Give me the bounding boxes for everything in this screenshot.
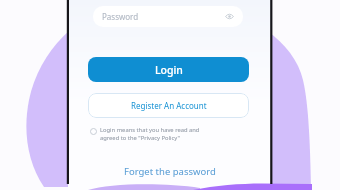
staticText: Register An Account bbox=[131, 100, 207, 111]
button[interactable]: Login means that you have read and agree… bbox=[90, 126, 202, 142]
button[interactable]: Register An Account bbox=[88, 93, 249, 118]
button[interactable]: Password bbox=[93, 6, 243, 27]
button[interactable]: Login bbox=[88, 57, 249, 82]
button[interactable]: Show password bbox=[224, 11, 235, 22]
staticText: Login means that you have read and agree… bbox=[100, 126, 202, 142]
button[interactable]: Forget the password bbox=[122, 163, 218, 180]
staticText: Login bbox=[155, 63, 183, 77]
staticText: Password bbox=[102, 11, 139, 22]
